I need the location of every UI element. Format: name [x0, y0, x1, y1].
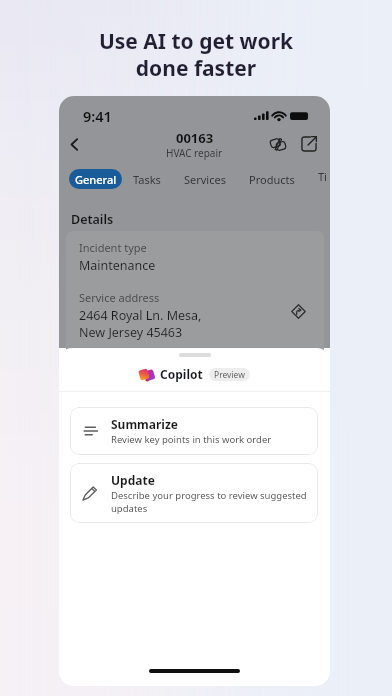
button[interactable]: Open in new window	[297, 132, 321, 156]
staticText: Products	[249, 172, 295, 187]
staticText: Service address	[79, 290, 160, 305]
staticText: Services	[184, 172, 226, 187]
staticText: Tasks	[133, 172, 161, 187]
staticText: New Jersey 45463	[79, 324, 183, 341]
staticText: General	[75, 172, 117, 187]
button[interactable]: Update	[70, 463, 318, 523]
staticText: 00163	[176, 129, 214, 147]
button[interactable]: Products	[238, 169, 307, 189]
staticText: Use AI to get work done faster	[0, 27, 392, 82]
staticText: Copilot	[160, 366, 203, 382]
button[interactable]: Copilot	[266, 132, 290, 156]
staticText: Update	[111, 472, 155, 488]
staticText: Details	[71, 211, 114, 228]
staticText: 9:41	[83, 106, 112, 126]
staticText: Tir	[318, 169, 328, 189]
staticText: Preview	[214, 369, 245, 381]
staticText: Maintenance	[79, 257, 156, 274]
button[interactable]: General	[69, 169, 122, 189]
staticText: Review key points in this work order	[111, 433, 272, 446]
button[interactable]: Tir	[307, 169, 330, 189]
button[interactable]: Services	[173, 169, 238, 189]
button[interactable]: Back	[62, 132, 86, 156]
staticText: HVAC repair	[166, 146, 223, 160]
button[interactable]: Tasks	[122, 169, 173, 189]
staticText: Summarize	[111, 416, 179, 432]
button[interactable]: Open map	[289, 302, 307, 320]
staticText: 2464 Royal Ln. Mesa,	[79, 307, 202, 324]
staticText: Incident type	[79, 240, 147, 255]
button[interactable]: Summarize	[70, 407, 318, 455]
staticText: Describe your progress to review suggest…	[111, 489, 311, 515]
